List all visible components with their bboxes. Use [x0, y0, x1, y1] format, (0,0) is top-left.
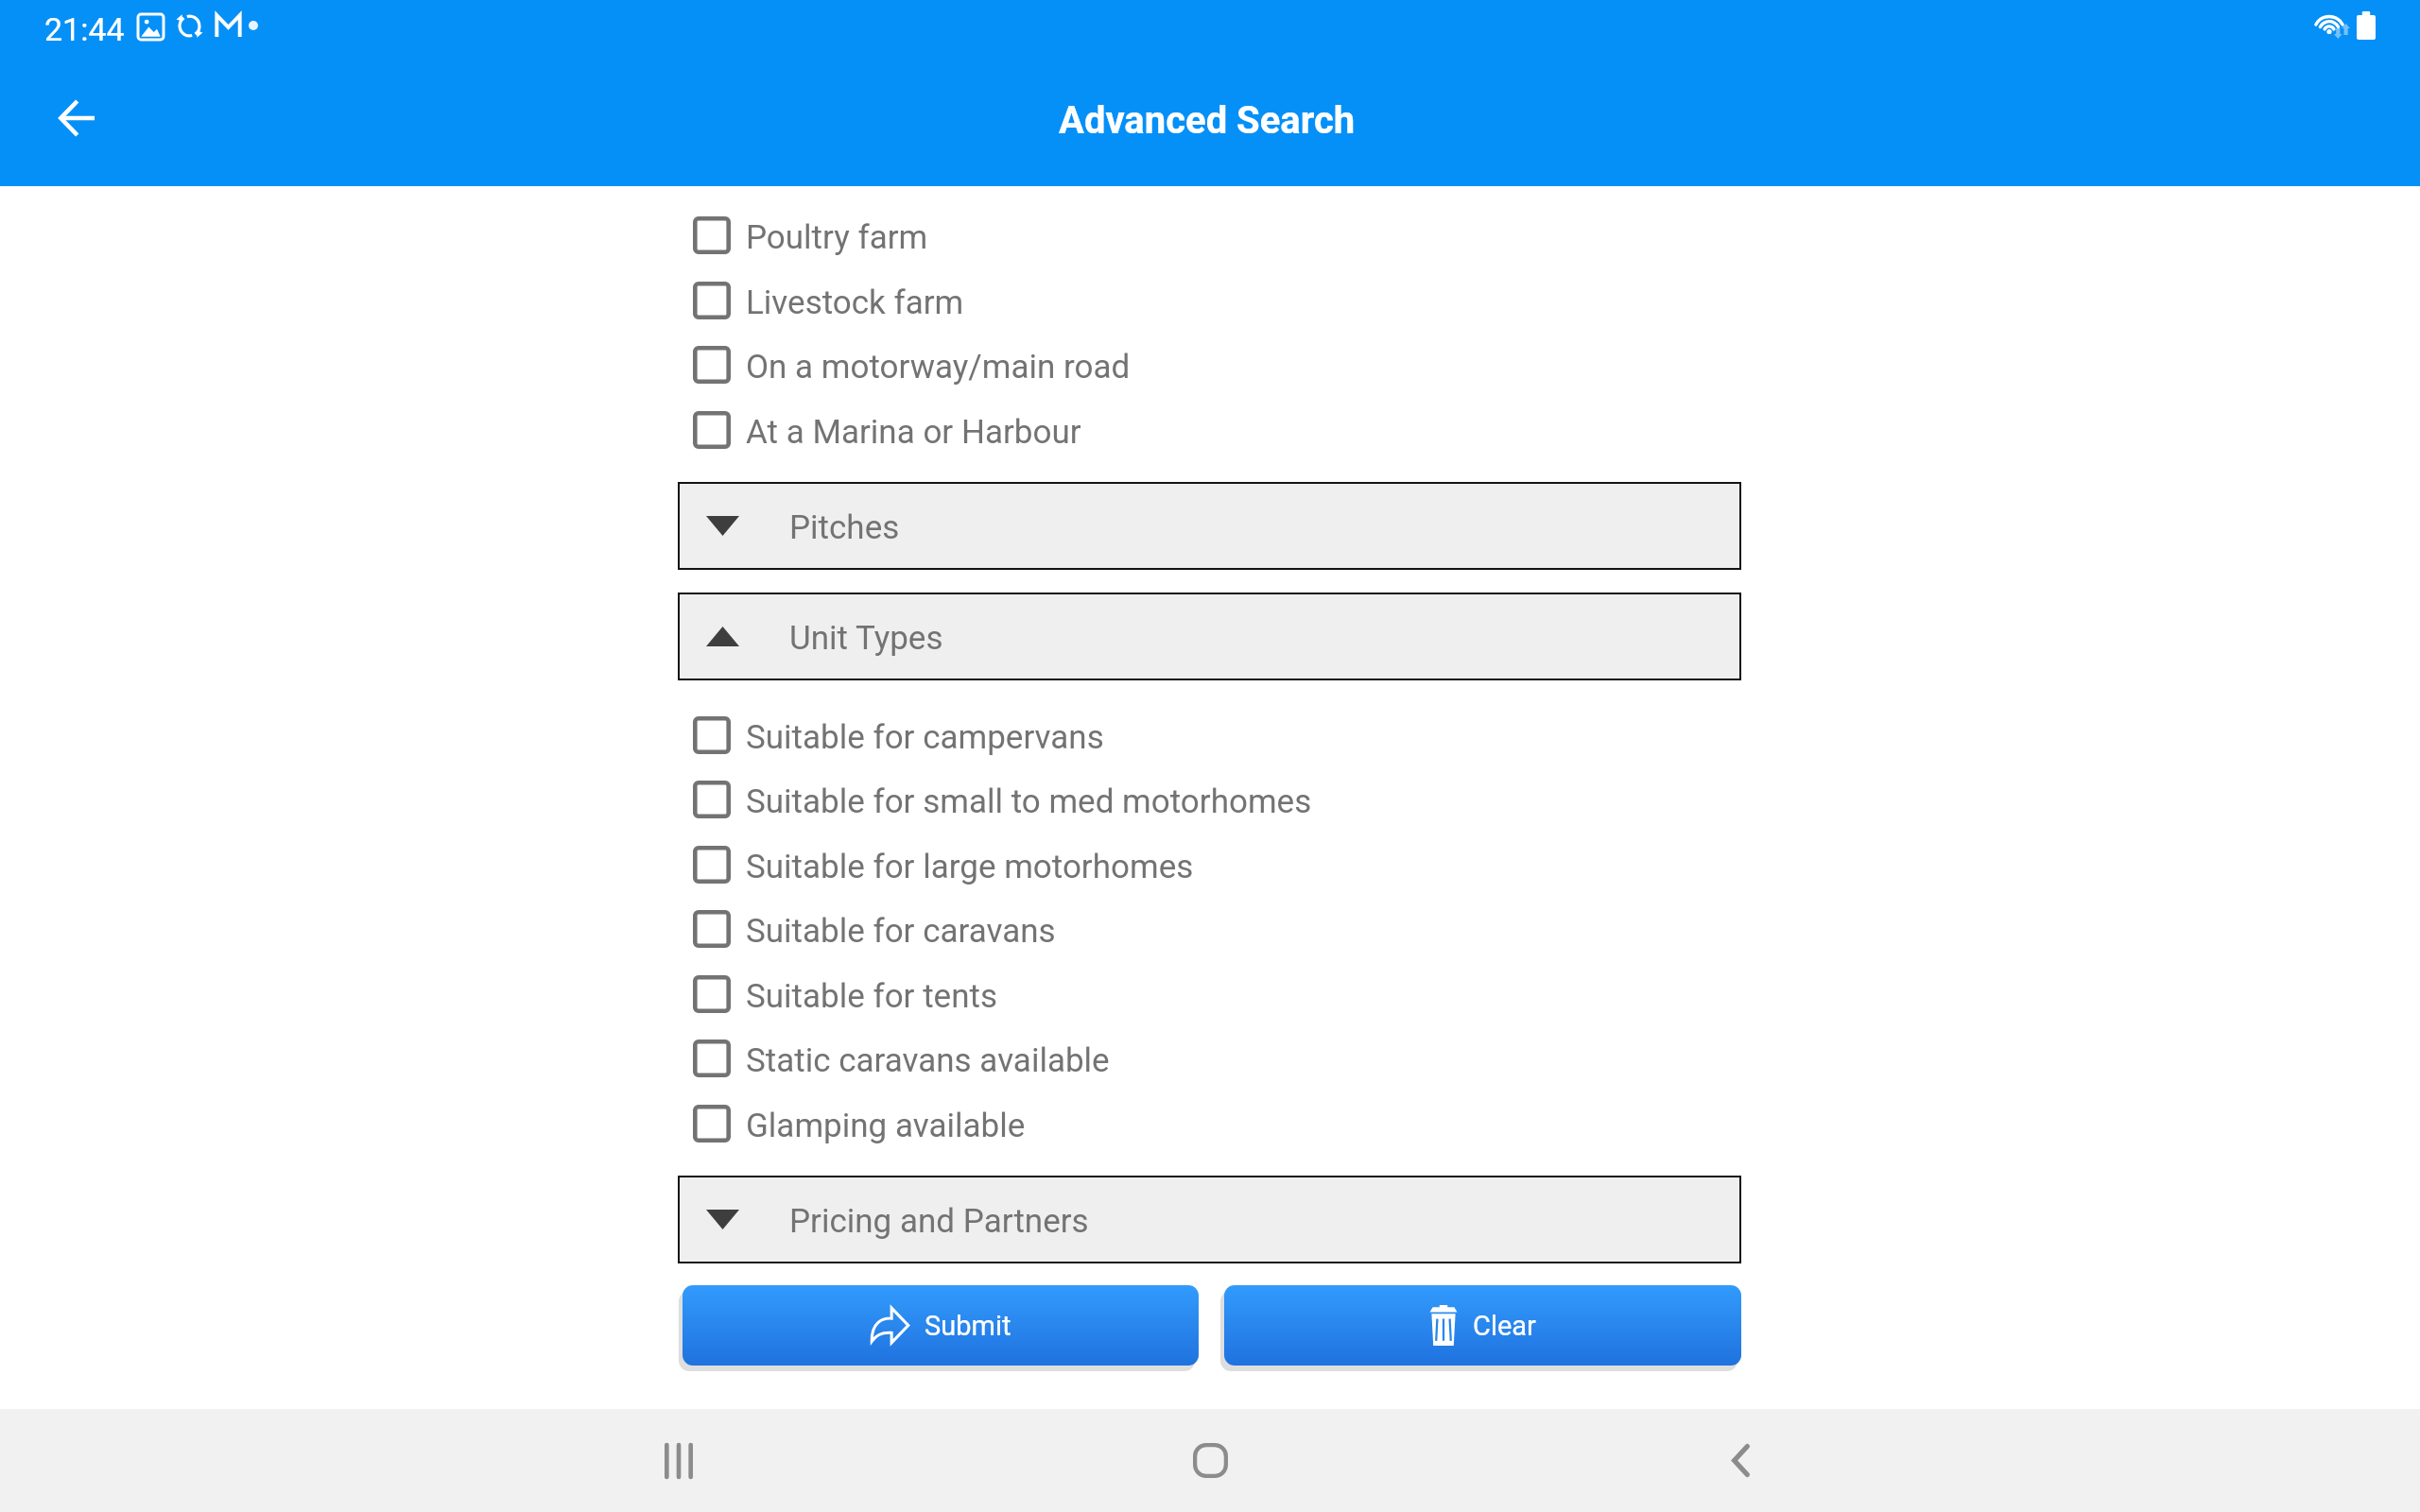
staticText: Clear — [1473, 1310, 1536, 1342]
button[interactable]: Unit Types — [678, 593, 1741, 680]
staticText: On a motorway/main road — [746, 348, 1131, 387]
button[interactable]: Pitches — [678, 482, 1741, 570]
staticText: 21:44 — [44, 10, 125, 48]
staticText: Suitable for small to med motorhomes — [746, 782, 1312, 821]
button[interactable]: Static caravans available — [680, 1026, 1129, 1091]
button[interactable]: Submit — [683, 1285, 1199, 1366]
button[interactable]: Suitable for large motorhomes — [680, 833, 1213, 897]
button[interactable]: Back — [1665, 1409, 1816, 1512]
button[interactable]: Suitable for tents — [680, 962, 1017, 1026]
staticText: At a Marina or Harbour — [746, 413, 1081, 452]
staticText: Pricing and Partners — [789, 1202, 1089, 1241]
staticText: Poultry farm — [746, 218, 928, 257]
button[interactable]: Suitable for campervans — [680, 703, 1123, 767]
button[interactable]: Back — [43, 84, 111, 152]
button[interactable]: Home — [1134, 1409, 1286, 1512]
button[interactable]: Recent apps — [603, 1409, 754, 1512]
staticText: Suitable for campervans — [746, 718, 1104, 757]
button[interactable]: Clear — [1224, 1285, 1741, 1366]
button[interactable]: At a Marina or Harbour — [680, 398, 1100, 462]
staticText: Advanced Search — [1059, 98, 1356, 143]
button[interactable]: Pricing and Partners — [678, 1176, 1741, 1263]
button[interactable]: On a motorway/main road — [680, 333, 1149, 397]
staticText: Static caravans available — [746, 1041, 1110, 1080]
staticText: Glamping available — [746, 1107, 1026, 1145]
staticText: Suitable for caravans — [746, 912, 1056, 951]
staticText: Unit Types — [789, 619, 943, 658]
button[interactable]: Suitable for caravans — [680, 897, 1075, 961]
button[interactable]: Suitable for small to med motorhomes — [680, 767, 1331, 832]
staticText: Livestock farm — [746, 283, 964, 322]
staticText: Submit — [925, 1310, 1011, 1342]
staticText: Suitable for large motorhomes — [746, 848, 1194, 886]
button[interactable]: Glamping available — [680, 1091, 1045, 1156]
staticText: Pitches — [789, 508, 900, 547]
button[interactable]: Livestock farm — [680, 268, 983, 333]
button[interactable]: Poultry farm — [680, 203, 947, 267]
staticText: Suitable for tents — [746, 977, 998, 1016]
